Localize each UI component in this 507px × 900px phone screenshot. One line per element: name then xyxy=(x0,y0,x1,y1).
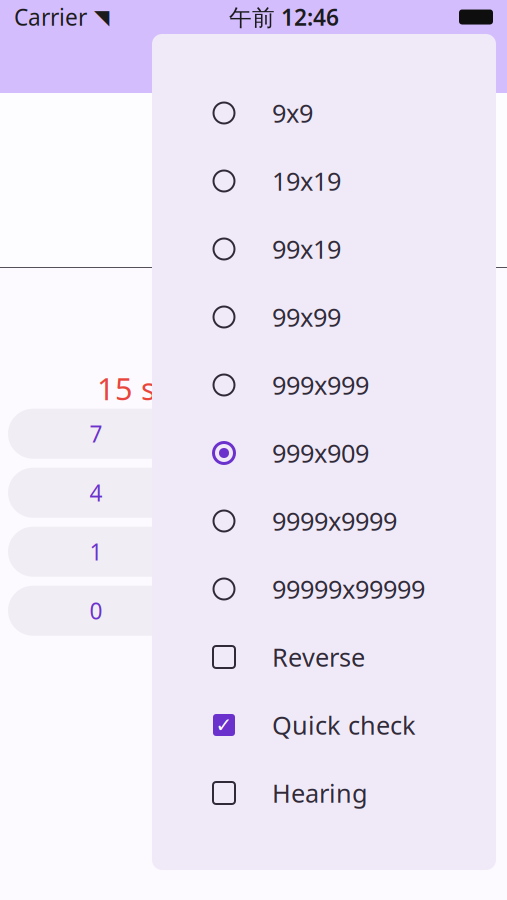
button[interactable]: Key xyxy=(200,468,376,518)
staticText: Carrier xyxy=(14,2,87,32)
staticText: Quick check xyxy=(272,708,416,742)
staticText: ◥ xyxy=(94,6,109,28)
button[interactable]: 1 xyxy=(8,527,184,577)
button[interactable]: 999x909 xyxy=(152,419,496,487)
staticText: 99x19 xyxy=(272,232,341,266)
staticText: 0 xyxy=(89,596,102,626)
button[interactable]: 7 xyxy=(8,409,184,459)
button[interactable]: 0 xyxy=(8,586,184,636)
staticText: 99x99 xyxy=(272,300,341,334)
staticText: 午前 12:46 xyxy=(229,2,339,32)
button[interactable]: 99x19 xyxy=(152,215,496,283)
button[interactable]: 99x99 xyxy=(152,283,496,351)
button[interactable]: Key xyxy=(200,586,376,636)
staticText: 4 xyxy=(89,478,102,508)
staticText: 999x909 xyxy=(272,436,369,470)
button[interactable]: ✓ xyxy=(152,691,496,759)
staticText: Reverse xyxy=(272,640,365,674)
button[interactable]: 9x9 xyxy=(152,79,496,147)
staticText: 7 xyxy=(89,419,102,449)
staticText: Hearing xyxy=(272,776,368,810)
staticText: 9999x9999 xyxy=(272,504,397,538)
button[interactable]: 99999x99999 xyxy=(152,555,496,623)
staticText: 19x19 xyxy=(272,164,341,198)
button[interactable]: 999x999 xyxy=(152,351,496,419)
button[interactable]: Key xyxy=(200,409,376,459)
button[interactable]: Reverse xyxy=(152,623,496,691)
button[interactable]: Hearing xyxy=(152,759,496,827)
staticText: 99999x99999 xyxy=(272,572,425,606)
button[interactable]: 4 xyxy=(8,468,184,518)
staticText: 1 xyxy=(89,537,102,567)
staticText: 999x999 xyxy=(272,368,369,402)
staticText: 15 se xyxy=(97,368,173,409)
staticText: 9x9 xyxy=(272,96,313,130)
button[interactable]: Key xyxy=(200,527,376,577)
button[interactable]: 9999x9999 xyxy=(152,487,496,555)
staticText: ✓ xyxy=(215,714,232,736)
button[interactable]: 19x19 xyxy=(152,147,496,215)
